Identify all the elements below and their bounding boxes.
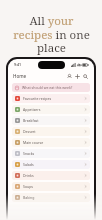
staticText: Soups — [23, 184, 34, 189]
button[interactable]: Search — [81, 72, 89, 80]
button[interactable]: Drinks — [12, 171, 90, 180]
staticText: Snacks — [23, 151, 35, 156]
staticText: All your recipes in one place — [13, 13, 90, 55]
button[interactable]: Dessert — [12, 127, 90, 136]
button[interactable]: Favourite recipes — [12, 94, 90, 103]
staticText: Salads — [23, 162, 34, 167]
button[interactable]: Main course — [12, 138, 90, 147]
button[interactable]: Profile — [65, 72, 73, 80]
button[interactable]: What should we eat this week? — [12, 83, 90, 92]
staticText: Baking — [23, 195, 35, 200]
button[interactable]: Appetizers — [12, 105, 90, 114]
staticText: Home — [13, 73, 27, 79]
staticText: What should we eat this week? — [22, 85, 73, 90]
button[interactable]: Breakfast — [12, 116, 90, 125]
button[interactable]: Baking — [12, 193, 90, 202]
staticText: Favourite recipes — [23, 96, 52, 101]
button[interactable]: Salads — [12, 160, 90, 169]
staticText: Dessert — [23, 129, 36, 134]
staticText: Drinks — [23, 173, 34, 178]
button[interactable]: Soups — [12, 182, 90, 191]
staticText: Main course — [23, 140, 44, 145]
button[interactable]: Add recipe — [73, 72, 81, 80]
staticText: Appetizers — [23, 107, 41, 112]
button[interactable]: Snacks — [12, 149, 90, 158]
staticText: Breakfast — [23, 118, 39, 123]
staticText: 9:41 — [14, 62, 22, 67]
